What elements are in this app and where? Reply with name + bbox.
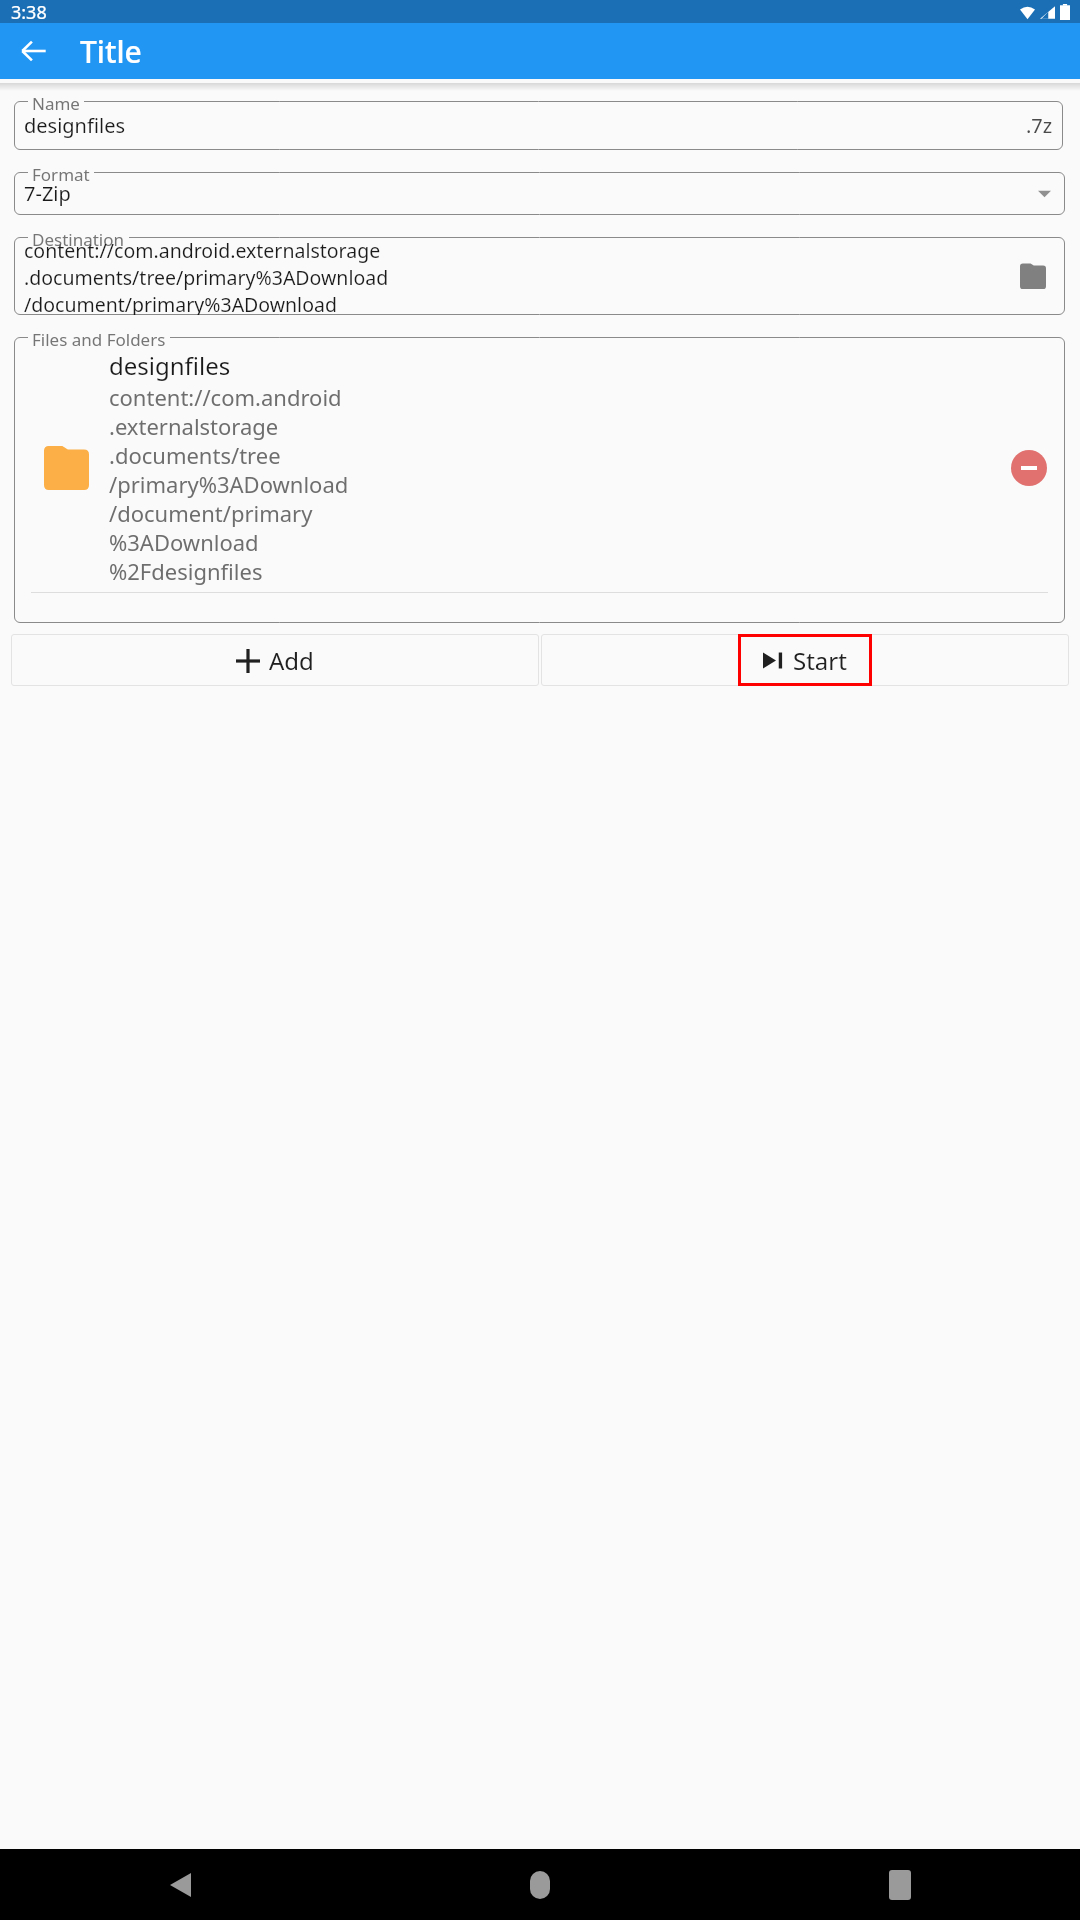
button[interactable]: Add <box>11 634 539 686</box>
staticText: Format <box>32 163 90 186</box>
staticText: Title <box>80 31 142 72</box>
staticText: content://com.android .externalstorage .… <box>109 382 349 586</box>
staticText: designfiles <box>24 112 126 139</box>
staticText: 7-Zip <box>24 180 71 207</box>
button[interactable]: Choose destination folder <box>1013 256 1053 296</box>
staticText: /document/primary%3ADownload <box>24 291 337 315</box>
button[interactable]: designfiles <box>14 337 1065 586</box>
button[interactable]: Home <box>360 1849 720 1920</box>
button[interactable] <box>541 634 1069 686</box>
staticText: Start <box>793 644 847 677</box>
button[interactable]: Remove <box>1005 444 1053 492</box>
staticText: .documents/tree/primary%3ADownload <box>24 264 389 291</box>
button[interactable]: Back <box>10 27 58 75</box>
staticText: Files and Folders <box>32 328 166 351</box>
staticText: Add <box>269 644 314 677</box>
staticText: Destination <box>32 228 125 251</box>
staticText: content://com.android.externalstorage <box>24 237 381 264</box>
staticText: Name <box>32 92 80 115</box>
staticText: .7z <box>1026 112 1053 139</box>
button[interactable]: Recent apps <box>720 1849 1080 1920</box>
staticText: designfiles <box>109 349 231 382</box>
button[interactable]: Back <box>0 1849 360 1920</box>
staticText: 3:38 <box>11 0 47 23</box>
